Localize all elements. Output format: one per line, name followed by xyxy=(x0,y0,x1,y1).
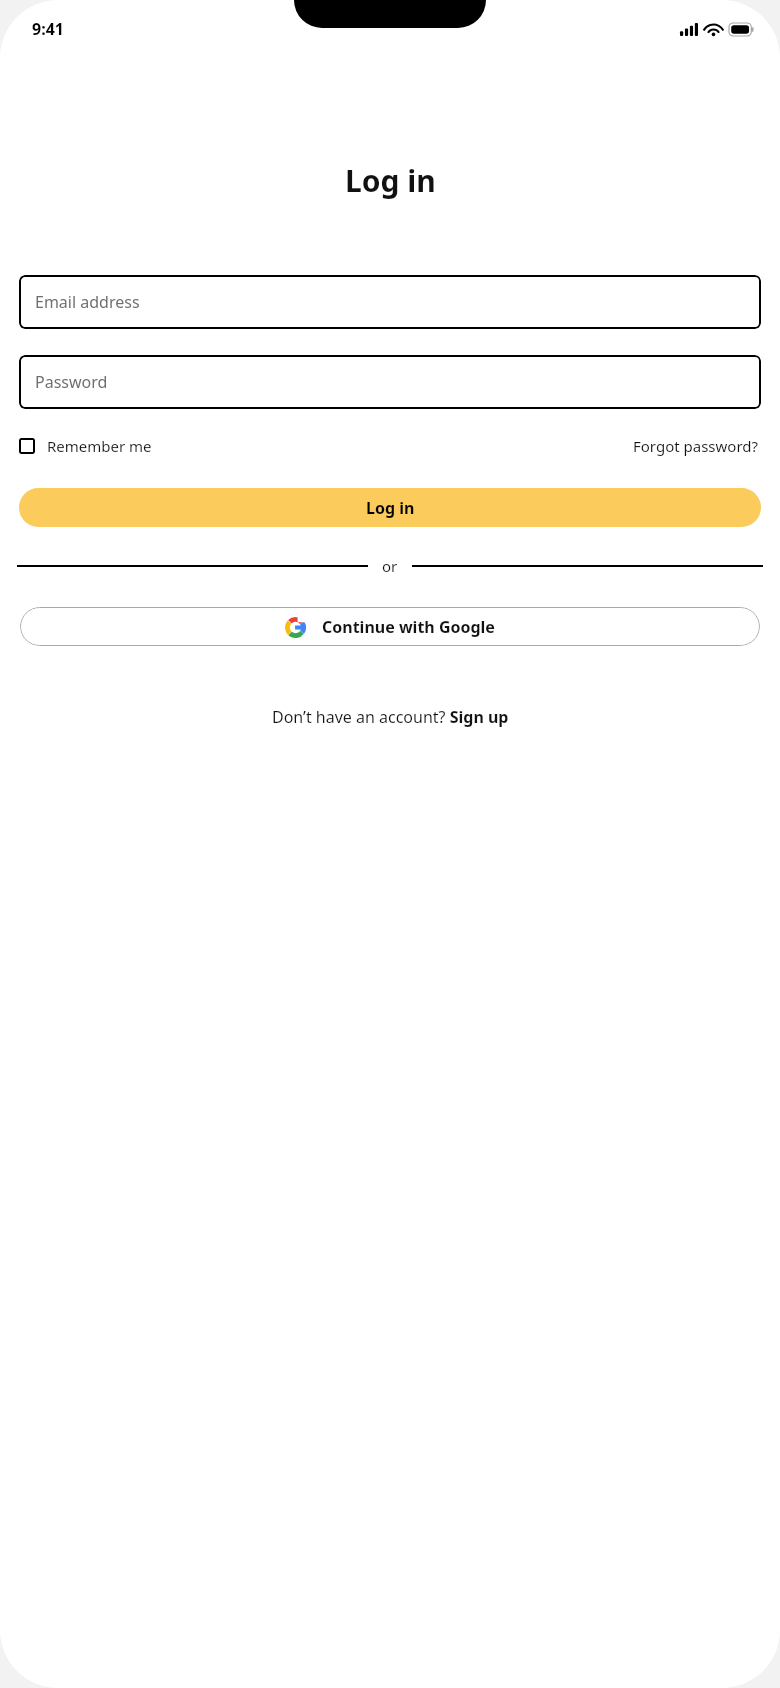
staticText: Continue with Google xyxy=(322,616,495,638)
staticText: Log in xyxy=(366,497,415,519)
staticText: or xyxy=(382,556,398,576)
button[interactable]: Don’t have an account? Sign up xyxy=(266,702,515,732)
button[interactable]: Email address xyxy=(19,275,761,329)
staticText: Password xyxy=(35,371,108,393)
other: Google xyxy=(285,617,306,638)
button[interactable]: Google xyxy=(20,607,760,646)
staticText: 9:41 xyxy=(32,18,64,40)
staticText: Remember me xyxy=(47,436,152,456)
button[interactable]: Password xyxy=(19,355,761,409)
button[interactable]: Forgot password? xyxy=(631,432,761,460)
staticText: Don’t have an account? Sign up xyxy=(272,706,509,728)
staticText: Email address xyxy=(35,291,140,313)
staticText: Log in xyxy=(345,160,436,201)
button[interactable]: Remember me xyxy=(19,432,152,460)
button[interactable]: Log in xyxy=(19,488,761,527)
staticText: Forgot password? xyxy=(633,436,759,456)
